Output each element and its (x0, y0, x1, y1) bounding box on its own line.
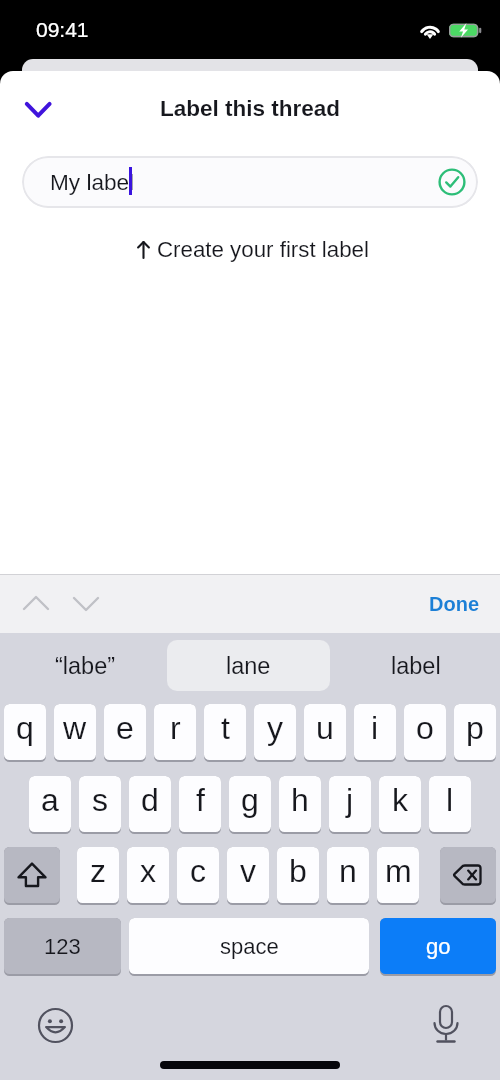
button[interactable]: Emoji keyboard (37, 1007, 74, 1044)
staticText: lane (226, 653, 271, 679)
button[interactable]: “labe” (5, 640, 165, 691)
staticText: space (220, 934, 279, 959)
button[interactable]: c (177, 847, 219, 903)
button[interactable]: x (127, 847, 169, 903)
button[interactable]: v (227, 847, 269, 903)
staticText: label (391, 653, 441, 679)
button[interactable]: i (354, 704, 396, 760)
staticText: i (371, 710, 379, 746)
staticText: Create your first label (157, 237, 369, 262)
button[interactable]: f (179, 776, 221, 832)
button[interactable]: l (429, 776, 471, 832)
button[interactable]: Collapse (14, 92, 62, 128)
staticText: go (426, 934, 451, 959)
button[interactable]: p (454, 704, 496, 760)
staticText: Done (429, 593, 479, 615)
staticText: w (63, 710, 87, 746)
staticText: e (116, 710, 134, 746)
button[interactable]: space (129, 918, 369, 974)
staticText: a (41, 782, 59, 818)
staticText: y (267, 710, 283, 746)
button[interactable]: Next field (66, 586, 106, 622)
button[interactable]: j (329, 776, 371, 832)
staticText: 09:41 (36, 18, 89, 41)
button[interactable]: Previous field (16, 586, 56, 622)
button[interactable]: go (380, 918, 496, 974)
staticText: g (241, 782, 259, 818)
button[interactable]: o (404, 704, 446, 760)
button[interactable]: w (54, 704, 96, 760)
staticText: l (446, 782, 454, 818)
button[interactable]: z (77, 847, 119, 903)
staticText: My label (50, 170, 135, 195)
button[interactable]: m (377, 847, 419, 903)
button[interactable]: u (304, 704, 346, 760)
staticText: z (90, 853, 106, 889)
staticText: n (339, 853, 357, 889)
button[interactable]: Dictate (427, 1003, 465, 1045)
staticText: v (240, 853, 256, 889)
button[interactable]: e (104, 704, 146, 760)
button[interactable]: d (129, 776, 171, 832)
staticText: b (289, 853, 307, 889)
button[interactable]: lane (167, 640, 330, 691)
button[interactable]: r (154, 704, 196, 760)
button[interactable]: 123 (4, 918, 121, 974)
button[interactable]: Shift (4, 847, 60, 903)
staticText: j (346, 782, 354, 818)
button[interactable]: My label (22, 156, 478, 208)
staticText: q (16, 710, 34, 746)
button[interactable]: s (79, 776, 121, 832)
button[interactable]: label (336, 640, 496, 691)
button[interactable]: Done (420, 586, 488, 622)
button[interactable]: n (327, 847, 369, 903)
button[interactable]: t (204, 704, 246, 760)
staticText: m (385, 853, 412, 889)
staticText: s (92, 782, 108, 818)
staticText: c (190, 853, 206, 889)
staticText: h (291, 782, 309, 818)
button[interactable]: b (277, 847, 319, 903)
staticText: Label this thread (0, 96, 500, 121)
button[interactable]: g (229, 776, 271, 832)
button[interactable]: q (4, 704, 46, 760)
staticText: r (170, 710, 181, 746)
button[interactable]: k (379, 776, 421, 832)
button[interactable]: a (29, 776, 71, 832)
staticText: p (466, 710, 484, 746)
staticText: k (392, 782, 408, 818)
button[interactable]: Backspace (440, 847, 496, 903)
button[interactable]: h (279, 776, 321, 832)
staticText: t (221, 710, 230, 746)
staticText: “labe” (55, 653, 116, 679)
staticText: f (196, 782, 205, 818)
staticText: d (141, 782, 159, 818)
staticText: u (316, 710, 334, 746)
button[interactable]: y (254, 704, 296, 760)
staticText: o (416, 710, 434, 746)
staticText: x (140, 853, 156, 889)
staticText: 123 (44, 934, 81, 959)
